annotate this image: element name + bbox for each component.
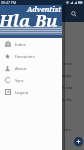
staticText: Ngezwi lakhe be: [40, 61, 73, 67]
button[interactable]: Search: [69, 9, 79, 19]
staticText: Sync: [15, 78, 24, 83]
staticText: Izulu lin,: [56, 97, 73, 103]
staticText: Amazulu ons: [45, 127, 71, 133]
staticText: Adventist: [27, 5, 62, 15]
button[interactable]: Index: [0, 38, 62, 50]
staticText: Favourites: [15, 54, 35, 59]
button[interactable]: Add to favourites: [73, 136, 84, 147]
staticText: 09:47 PM: [1, 0, 17, 5]
button[interactable]: Sync: [0, 74, 62, 86]
button[interactable]: About: [0, 62, 62, 74]
staticText: Namanz' eza: [47, 85, 73, 91]
staticText: Umhlab' wagin,: [42, 73, 73, 79]
button[interactable]: Logout: [0, 86, 62, 98]
button[interactable]: Favourites: [0, 50, 62, 62]
staticText: Logout: [15, 90, 29, 95]
staticText: About: [15, 66, 27, 71]
staticText: Index: [15, 42, 26, 47]
staticText: Hla Bu: [0, 9, 58, 32]
